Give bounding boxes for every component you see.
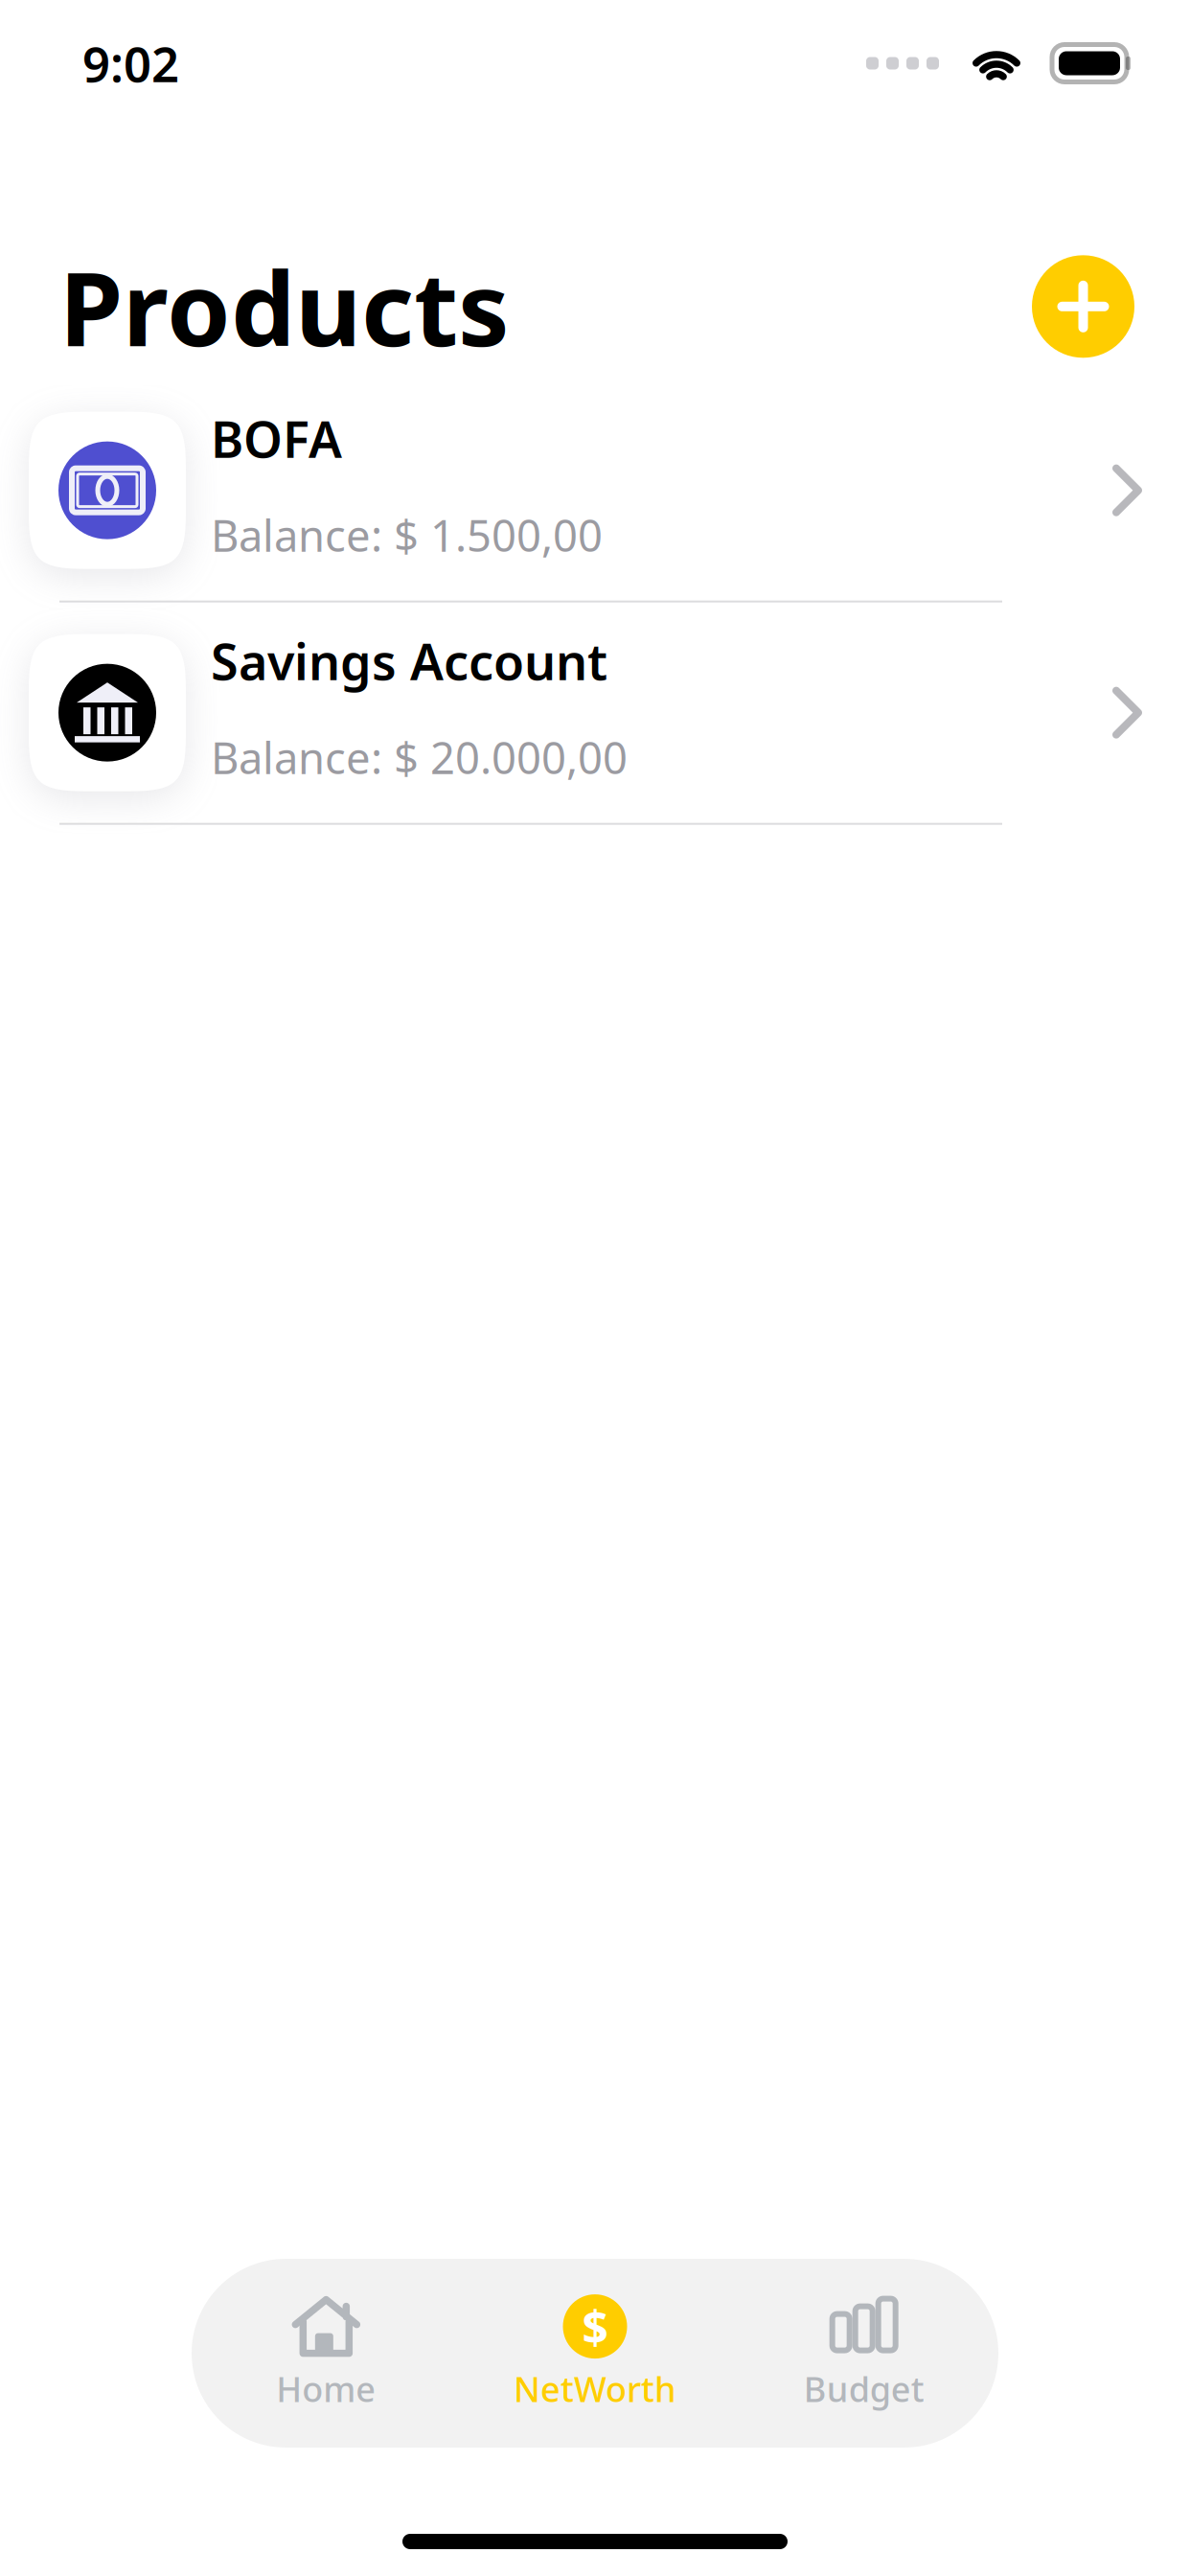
staticText: Balance: $ 20.000,00 [211, 728, 628, 786]
staticText: Home [276, 2366, 376, 2412]
button[interactable]: BOFA [0, 380, 1190, 602]
staticText: 9:02 [82, 31, 179, 96]
staticText: Products [59, 239, 510, 374]
button[interactable]: Savings Account [0, 602, 1190, 825]
staticText: BOFA [211, 405, 342, 472]
staticText: Balance: $ 1.500,00 [211, 506, 603, 564]
staticText: Savings Account [211, 628, 607, 694]
staticText: NetWorth [514, 2366, 676, 2412]
button[interactable]: Home [192, 2259, 461, 2448]
button[interactable]: Budget [729, 2259, 998, 2448]
staticText: Budget [804, 2366, 924, 2412]
button[interactable]: $ [461, 2259, 730, 2448]
staticText: $ [582, 2296, 608, 2357]
button[interactable]: Add product [1032, 255, 1134, 358]
